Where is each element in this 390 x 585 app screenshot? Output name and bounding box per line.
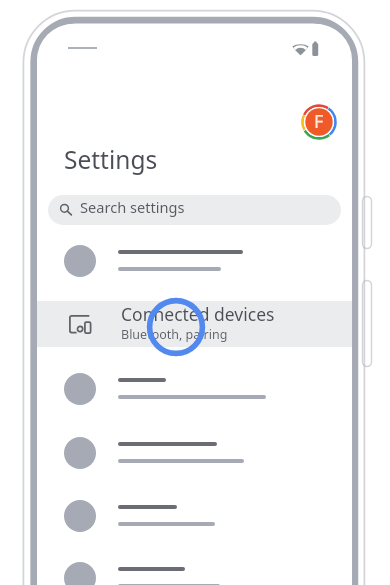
button[interactable]: Search settings xyxy=(48,195,341,225)
staticText: Search settings xyxy=(80,197,185,217)
button[interactable] xyxy=(37,301,352,347)
button[interactable] xyxy=(37,484,352,548)
button[interactable] xyxy=(37,357,352,421)
button[interactable] xyxy=(37,229,352,293)
staticText: Connected devices xyxy=(121,302,275,326)
staticText: Settings xyxy=(64,143,158,176)
staticText: Bluetooth, pairing xyxy=(121,326,228,343)
button[interactable]: Account xyxy=(301,104,337,140)
staticText: F xyxy=(314,109,324,134)
button[interactable] xyxy=(37,421,352,485)
button[interactable] xyxy=(37,546,352,585)
